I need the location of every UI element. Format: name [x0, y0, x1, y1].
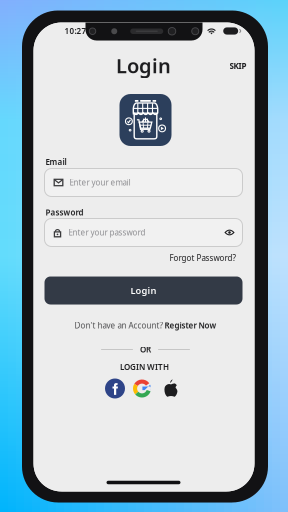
button[interactable]: Forgot Password?: [166, 249, 238, 267]
staticText: Enter your email: [69, 177, 130, 188]
staticText: OR: [140, 344, 151, 355]
staticText: LOGIN WITH: [120, 362, 169, 372]
button[interactable]: Don't have an Account?: [72, 317, 218, 334]
staticText: Enter your password: [68, 227, 145, 238]
staticText: Forgot Password?: [169, 253, 235, 263]
button[interactable]: Sign in with Facebook: [105, 378, 125, 398]
button[interactable]: SKIP: [224, 56, 251, 76]
staticText: Email: [45, 157, 66, 167]
staticText: Login: [130, 284, 156, 297]
button[interactable]: Login: [44, 276, 242, 304]
staticText: Register Now: [164, 320, 216, 331]
staticText: Login: [116, 52, 171, 79]
button[interactable]: Sign in with Google: [131, 377, 153, 399]
staticText: Don't have an Account?: [74, 320, 164, 331]
button[interactable]: Enter your email: [44, 168, 242, 196]
staticText: 10:27: [64, 26, 86, 36]
staticText: SKIP: [229, 61, 246, 71]
staticText: Password: [45, 207, 83, 218]
button[interactable]: Enter your password: [44, 218, 242, 246]
button[interactable]: Sign in with Apple: [163, 379, 179, 398]
